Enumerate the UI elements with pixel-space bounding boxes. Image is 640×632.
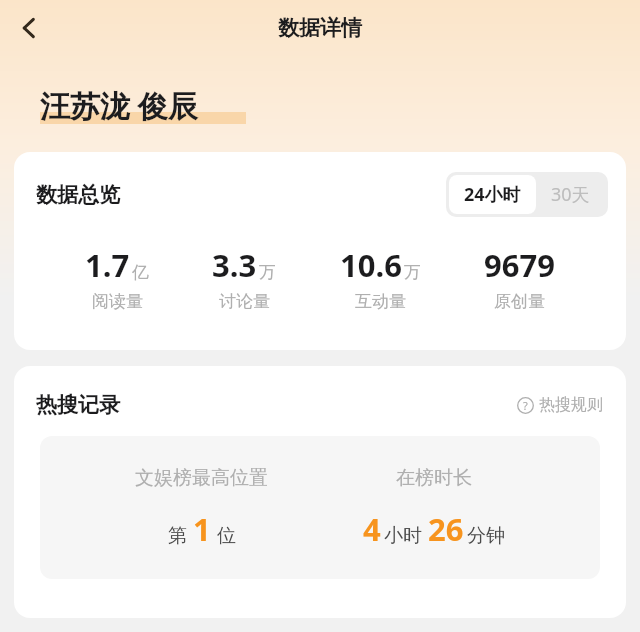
staticText: 9679 [484, 244, 555, 286]
button[interactable]: 30天 [536, 175, 605, 214]
staticText: 第 [168, 524, 187, 548]
staticText: 热搜规则 [539, 395, 603, 415]
staticText: 位 [217, 524, 236, 548]
staticText: 数据总览 [36, 182, 120, 208]
staticText: 小时 [384, 524, 422, 548]
staticText: 3.3 [212, 244, 257, 286]
staticText: 分钟 [467, 524, 505, 548]
staticText: 阅读量 [92, 291, 143, 312]
staticText: 汪苏泷 俊辰 [40, 85, 198, 126]
staticText: 26 [428, 508, 464, 550]
staticText: 1 [193, 508, 211, 550]
staticText: 讨论量 [219, 291, 270, 312]
staticText: 在榜时长 [396, 466, 472, 490]
staticText: 文娱榜最高位置 [135, 466, 268, 490]
staticText: 万 [404, 262, 421, 283]
button[interactable]: 24小时 [449, 175, 536, 214]
staticText: 数据详情 [278, 15, 362, 41]
staticText: 30天 [551, 182, 590, 207]
staticText: 10.6 [340, 244, 402, 286]
staticText: 4 [363, 508, 381, 550]
staticText: 亿 [132, 262, 149, 283]
button[interactable]: ? [514, 392, 606, 418]
button[interactable]: Back [6, 5, 52, 51]
staticText: ? [523, 398, 528, 413]
staticText: 万 [259, 262, 276, 283]
staticText: 1.7 [85, 244, 130, 286]
staticText: 原创量 [494, 291, 545, 312]
staticText: 24小时 [464, 182, 521, 207]
staticText: 热搜记录 [36, 392, 120, 418]
staticText: 互动量 [355, 291, 406, 312]
